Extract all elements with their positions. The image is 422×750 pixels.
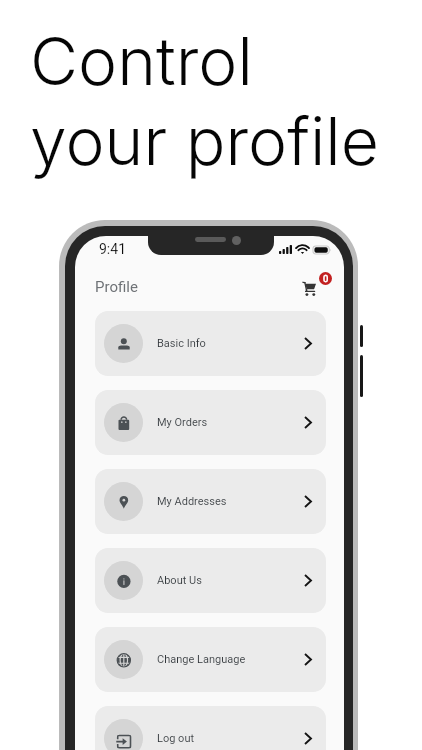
button[interactable]: My Addresses bbox=[95, 469, 326, 534]
button[interactable]: Log out bbox=[95, 706, 326, 750]
staticText: 9:41 bbox=[99, 241, 126, 257]
button[interactable]: Basic Info bbox=[95, 311, 326, 376]
staticText: About Us bbox=[157, 574, 202, 587]
staticText: Change Language bbox=[157, 653, 246, 666]
button[interactable]: Change Language bbox=[95, 627, 326, 692]
staticText: 0 bbox=[323, 273, 329, 284]
button[interactable]: About Us bbox=[95, 548, 326, 613]
staticText: Control bbox=[30, 21, 253, 101]
staticText: Log out bbox=[157, 732, 195, 745]
staticText: your profile bbox=[30, 101, 379, 181]
staticText: My Orders bbox=[157, 416, 208, 429]
staticText: My Addresses bbox=[157, 495, 227, 508]
staticText: Profile bbox=[95, 278, 138, 296]
button[interactable]: My Orders bbox=[95, 390, 326, 455]
button[interactable]: Cart bbox=[291, 268, 329, 306]
staticText: Basic Info bbox=[157, 337, 206, 350]
